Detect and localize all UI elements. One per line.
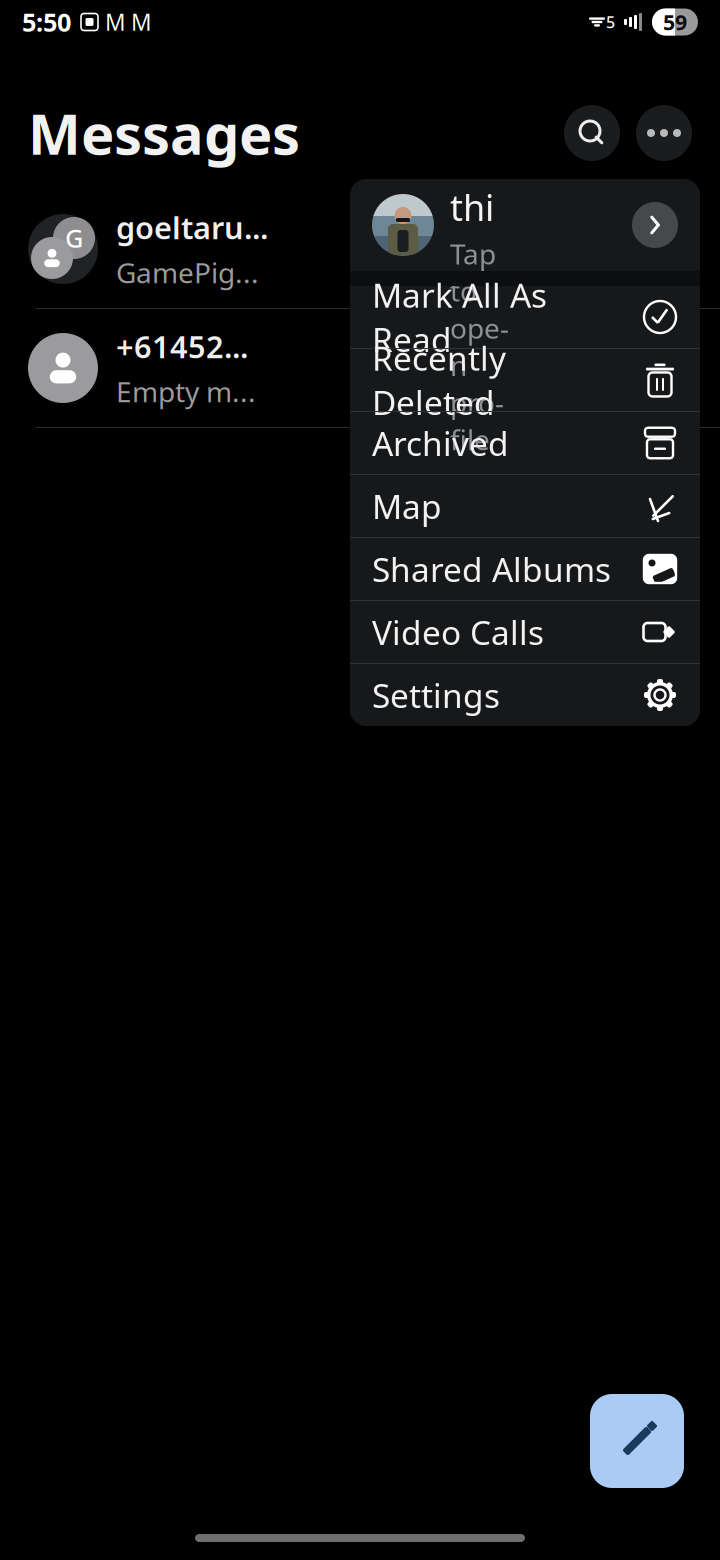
staticText: Mark All As Read bbox=[372, 273, 547, 361]
button[interactable]: Video Calls bbox=[350, 601, 700, 663]
button[interactable]: G bbox=[0, 190, 720, 309]
staticText: Messages bbox=[28, 96, 300, 170]
staticText: 5 bbox=[606, 11, 615, 33]
button[interactable]: Archived bbox=[350, 412, 700, 474]
staticText: M bbox=[105, 7, 126, 37]
staticText: Map bbox=[372, 484, 442, 528]
staticText: GamePig... bbox=[116, 254, 259, 291]
button[interactable]: Search bbox=[564, 105, 620, 161]
staticText: Shared Albums bbox=[372, 547, 611, 591]
button[interactable]: +61452... bbox=[0, 309, 720, 428]
staticText: Video Calls bbox=[372, 610, 544, 654]
button[interactable]: Map bbox=[350, 475, 700, 537]
button[interactable]: Recently Deleted bbox=[350, 349, 700, 411]
staticText: Settings bbox=[372, 673, 500, 717]
staticText: Archived bbox=[372, 421, 509, 465]
button[interactable]: Raghav Sethi bbox=[350, 179, 700, 271]
staticText: M bbox=[131, 7, 152, 37]
staticText: Recently Deleted bbox=[372, 336, 506, 424]
button[interactable]: New message bbox=[590, 1394, 684, 1488]
button[interactable]: More options bbox=[636, 105, 692, 161]
staticText: 59 bbox=[663, 8, 687, 36]
staticText: 5:50 bbox=[22, 5, 71, 39]
staticText: Raghav Sethi bbox=[450, 0, 506, 231]
button[interactable]: Settings bbox=[350, 664, 700, 726]
staticText: +61452... bbox=[116, 326, 248, 367]
button[interactable]: Shared Albums bbox=[350, 538, 700, 600]
staticText: Tap to open profile bbox=[450, 235, 509, 458]
button[interactable]: Mark All As Read bbox=[350, 286, 700, 348]
staticText: G bbox=[65, 221, 83, 255]
staticText: Empty m... bbox=[116, 373, 256, 410]
staticText: goeltaru... bbox=[116, 207, 268, 248]
